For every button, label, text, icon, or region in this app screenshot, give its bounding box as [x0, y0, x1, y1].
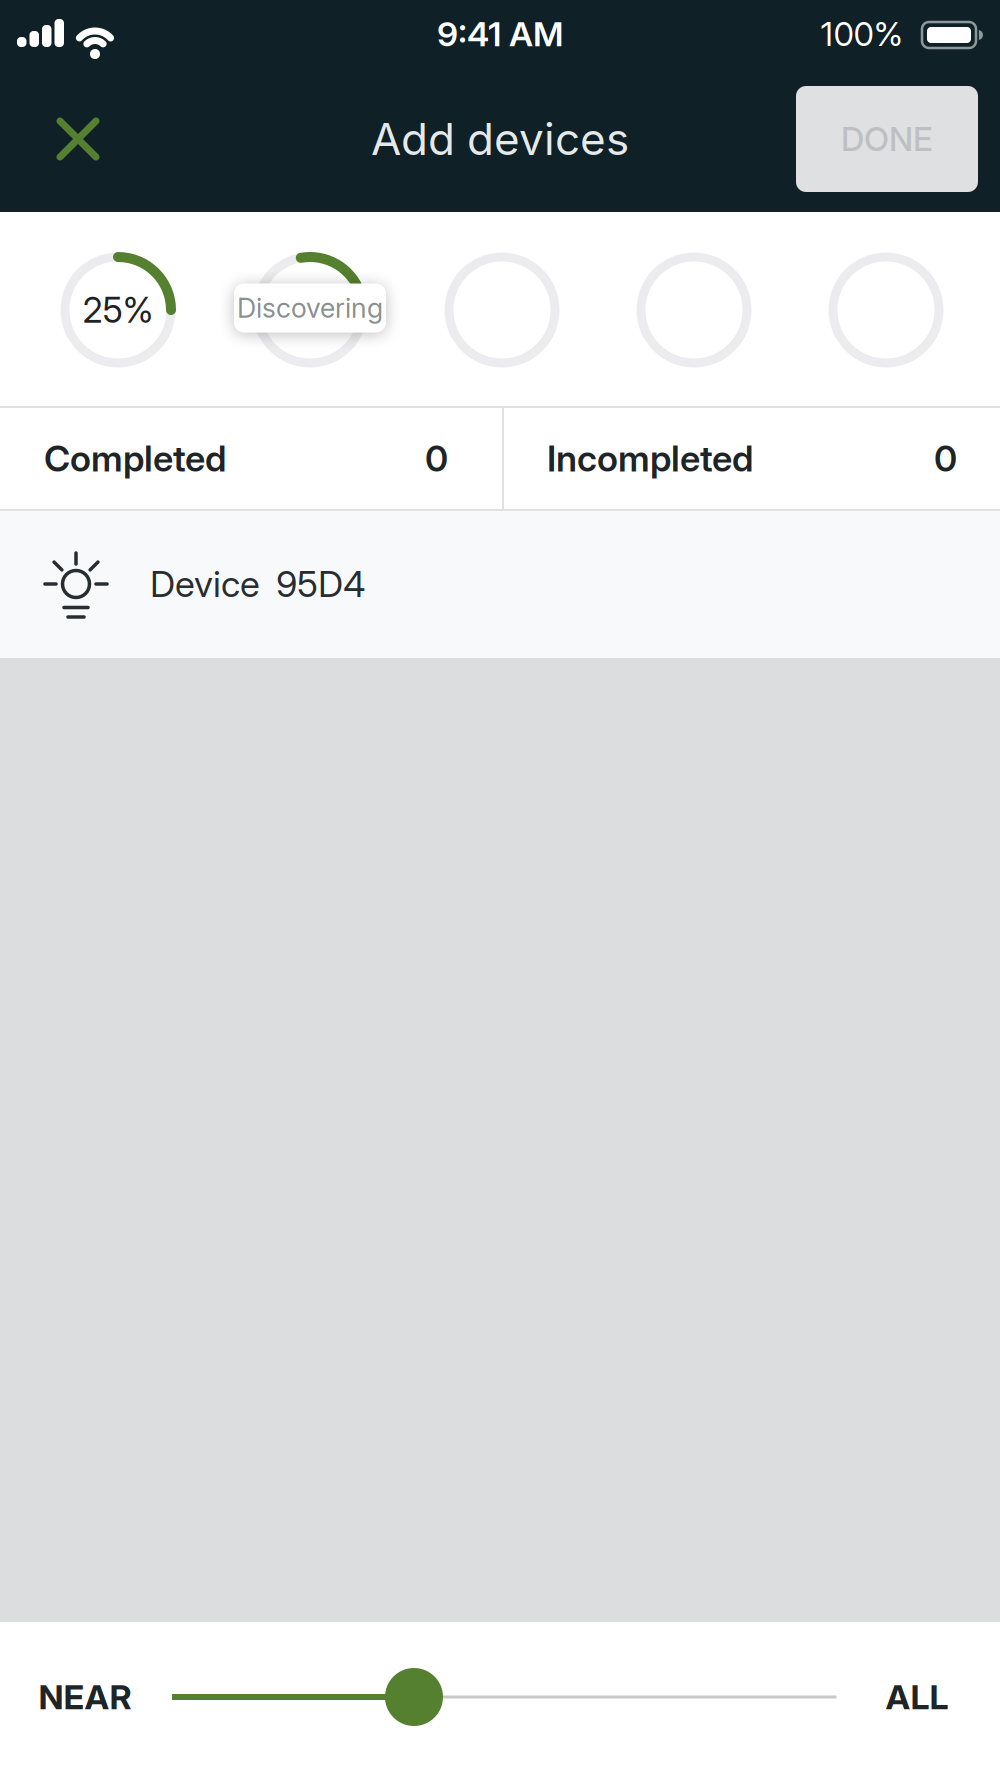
staticText: 0 [934, 437, 957, 480]
staticText: DONE [841, 119, 933, 159]
staticText: 25% [82, 289, 153, 331]
staticText: Device [150, 562, 260, 606]
staticText: 0 [425, 437, 448, 480]
staticText: Completed [44, 437, 226, 480]
staticText: Incompleted [547, 437, 753, 480]
staticText: 95D4 [276, 562, 366, 606]
button[interactable]: Device [0, 511, 1000, 658]
staticText: 100% [820, 14, 903, 54]
button[interactable]: Incompleted [504, 408, 1000, 509]
button[interactable]: Completed [0, 408, 502, 509]
staticText: Add devices [371, 112, 629, 166]
staticText: NEAR [38, 1676, 131, 1717]
staticText: ALL [885, 1676, 948, 1717]
button[interactable]: Close [38, 99, 118, 179]
button[interactable]: Distance slider [385, 1668, 443, 1726]
button[interactable]: DONE [796, 86, 978, 192]
staticText: Discovering [237, 292, 383, 324]
staticText: 9:41 AM [437, 13, 563, 54]
